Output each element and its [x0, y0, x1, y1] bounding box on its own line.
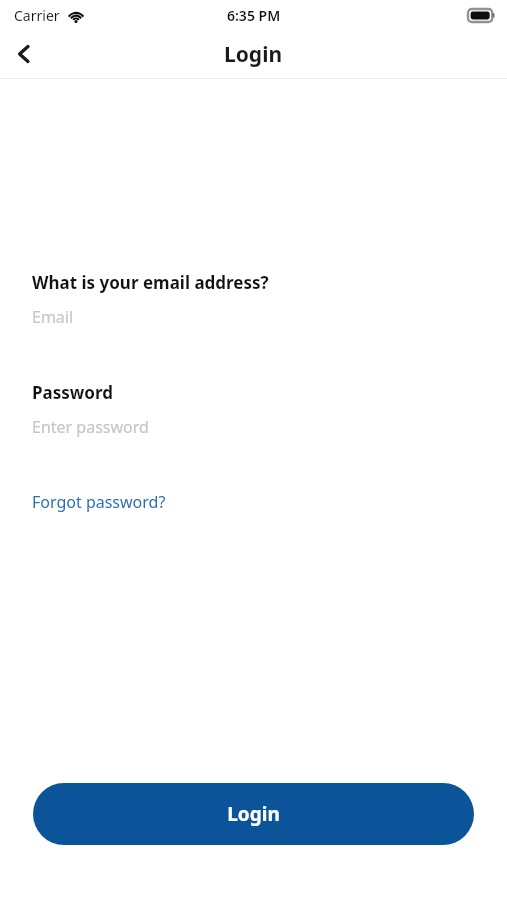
button[interactable]: Enter password	[32, 416, 475, 438]
button[interactable]: Forgot password?	[32, 489, 166, 515]
staticText: Password	[32, 381, 113, 404]
staticText: Login	[227, 801, 280, 827]
button[interactable]: Login	[33, 783, 474, 845]
staticText: Carrier	[14, 6, 60, 25]
staticText: Login	[224, 40, 283, 69]
staticText: Forgot password?	[32, 491, 166, 513]
staticText: What is your email address?	[32, 271, 269, 294]
staticText: Enter password	[32, 416, 149, 438]
button[interactable]: Back	[0, 30, 48, 78]
button[interactable]: Email	[32, 306, 475, 328]
staticText: Email	[32, 306, 74, 328]
staticText: 6:35 PM	[227, 6, 281, 25]
